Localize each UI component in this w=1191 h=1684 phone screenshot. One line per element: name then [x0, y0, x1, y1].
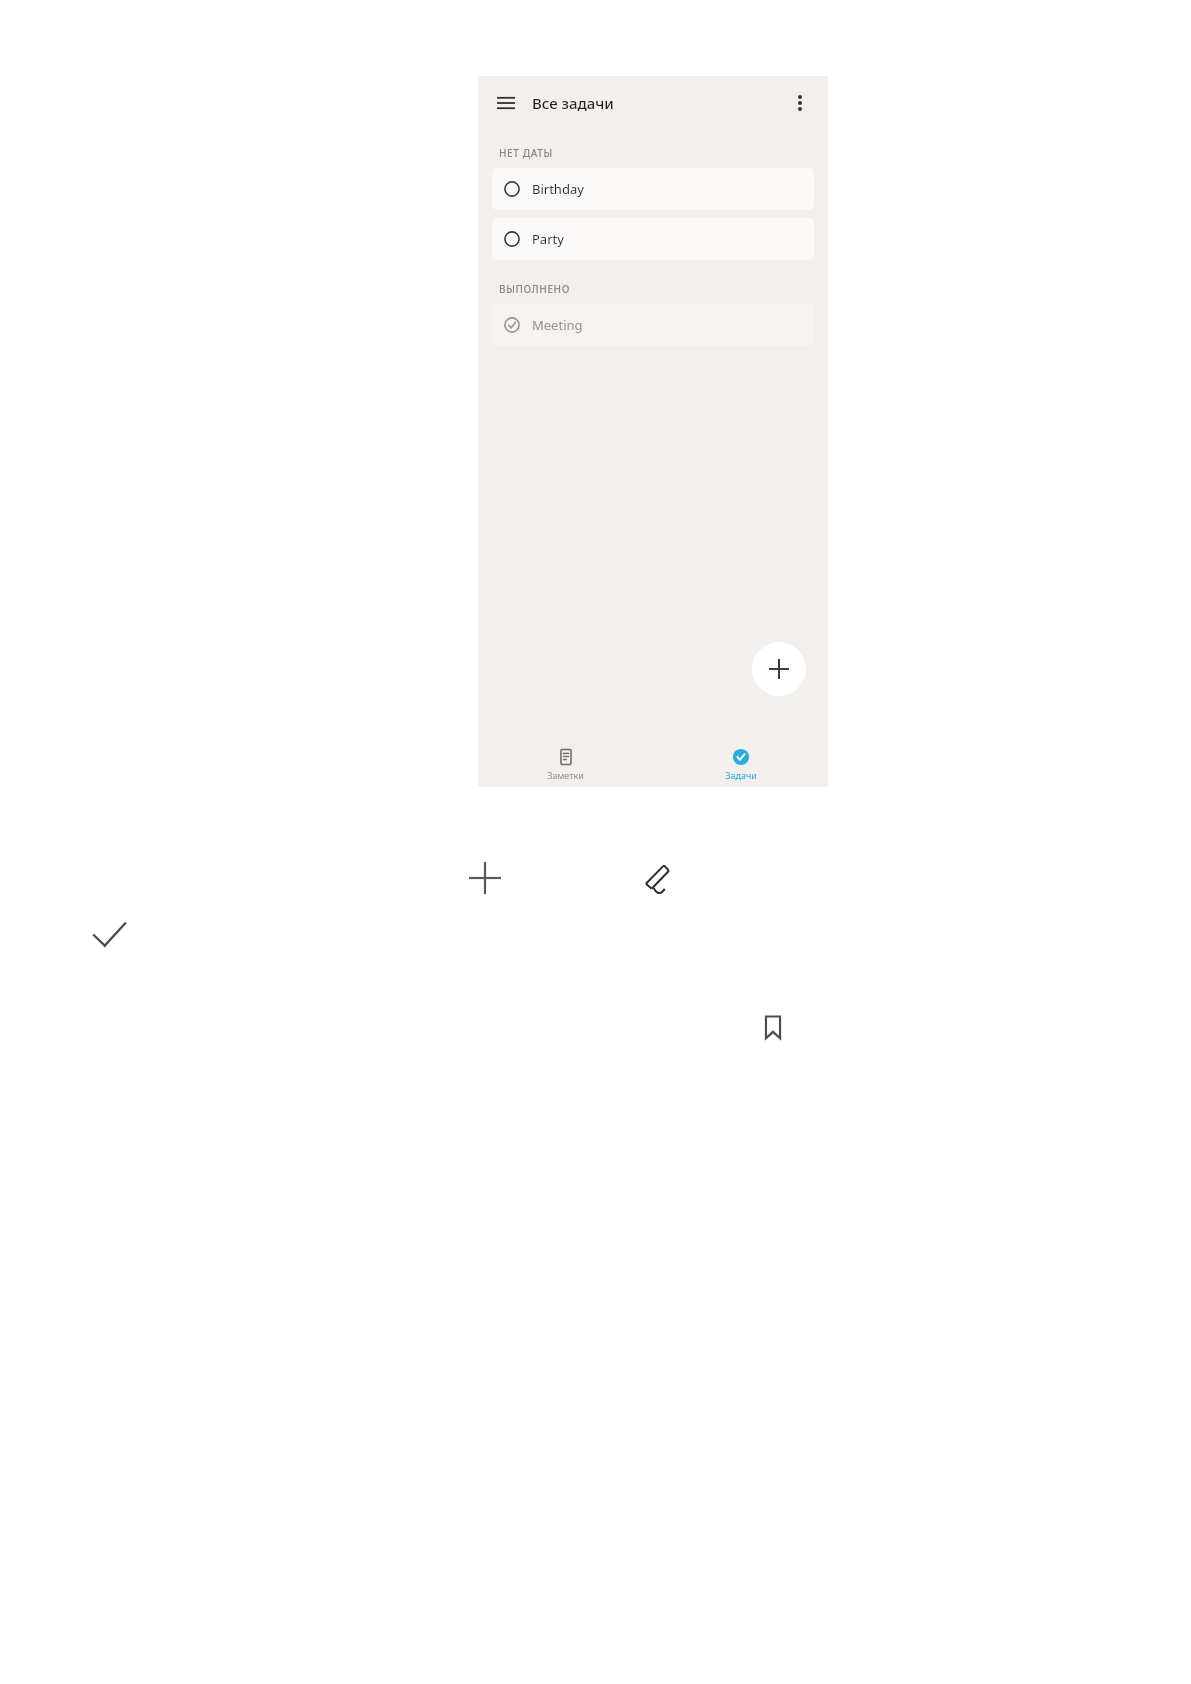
button[interactable]: Meeting: [492, 304, 814, 346]
button[interactable]: Birthday: [492, 168, 814, 210]
button[interactable]: Party: [492, 218, 814, 260]
staticText: Задачи: [725, 769, 757, 781]
button[interactable]: Bookmark: [757, 1012, 789, 1044]
staticText: НЕТ ДАТЫ: [499, 146, 553, 160]
button[interactable]: Open navigation menu: [488, 85, 524, 121]
staticText: Party: [532, 230, 564, 248]
staticText: Birthday: [532, 180, 584, 198]
button[interactable]: Edit: [638, 860, 674, 896]
button[interactable]: Задачи: [653, 741, 828, 787]
button[interactable]: More options: [782, 85, 818, 121]
staticText: Meeting: [532, 316, 583, 334]
staticText: Все задачи: [532, 93, 614, 113]
button[interactable]: Done: [90, 916, 130, 956]
staticText: ВЫПОЛНЕНО: [499, 282, 570, 296]
button[interactable]: Add task: [752, 642, 806, 696]
button[interactable]: Заметки: [478, 741, 653, 787]
button[interactable]: Add: [465, 858, 505, 898]
staticText: Заметки: [547, 769, 584, 781]
